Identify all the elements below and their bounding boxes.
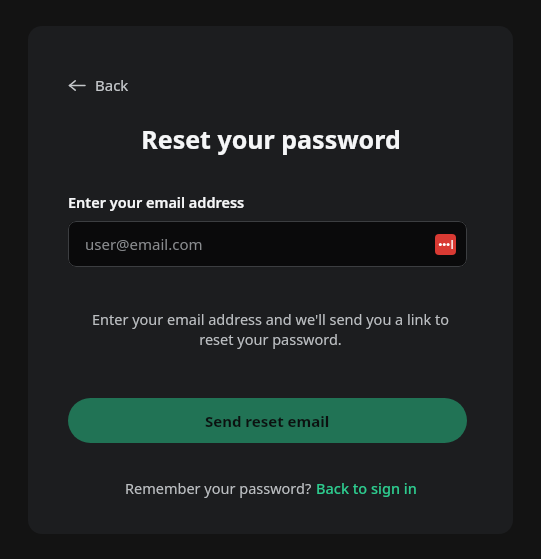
staticText: Back to sign in	[316, 478, 417, 498]
staticText: Remember your password?	[125, 478, 316, 498]
button[interactable]: Fill password	[435, 234, 456, 255]
staticText: Enter your email address	[68, 192, 245, 212]
staticText: Enter your email address and we'll send …	[74, 309, 467, 350]
button[interactable]: Back	[64, 71, 133, 99]
staticText: Reset your password	[141, 122, 401, 156]
staticText: Send reset email	[205, 411, 330, 431]
staticText: Back	[95, 75, 129, 95]
button[interactable]: Send reset email	[68, 398, 467, 443]
button[interactable]: user@email.com	[68, 221, 467, 267]
staticText: user@email.com	[85, 234, 203, 254]
button[interactable]: Back to sign in	[316, 478, 417, 498]
